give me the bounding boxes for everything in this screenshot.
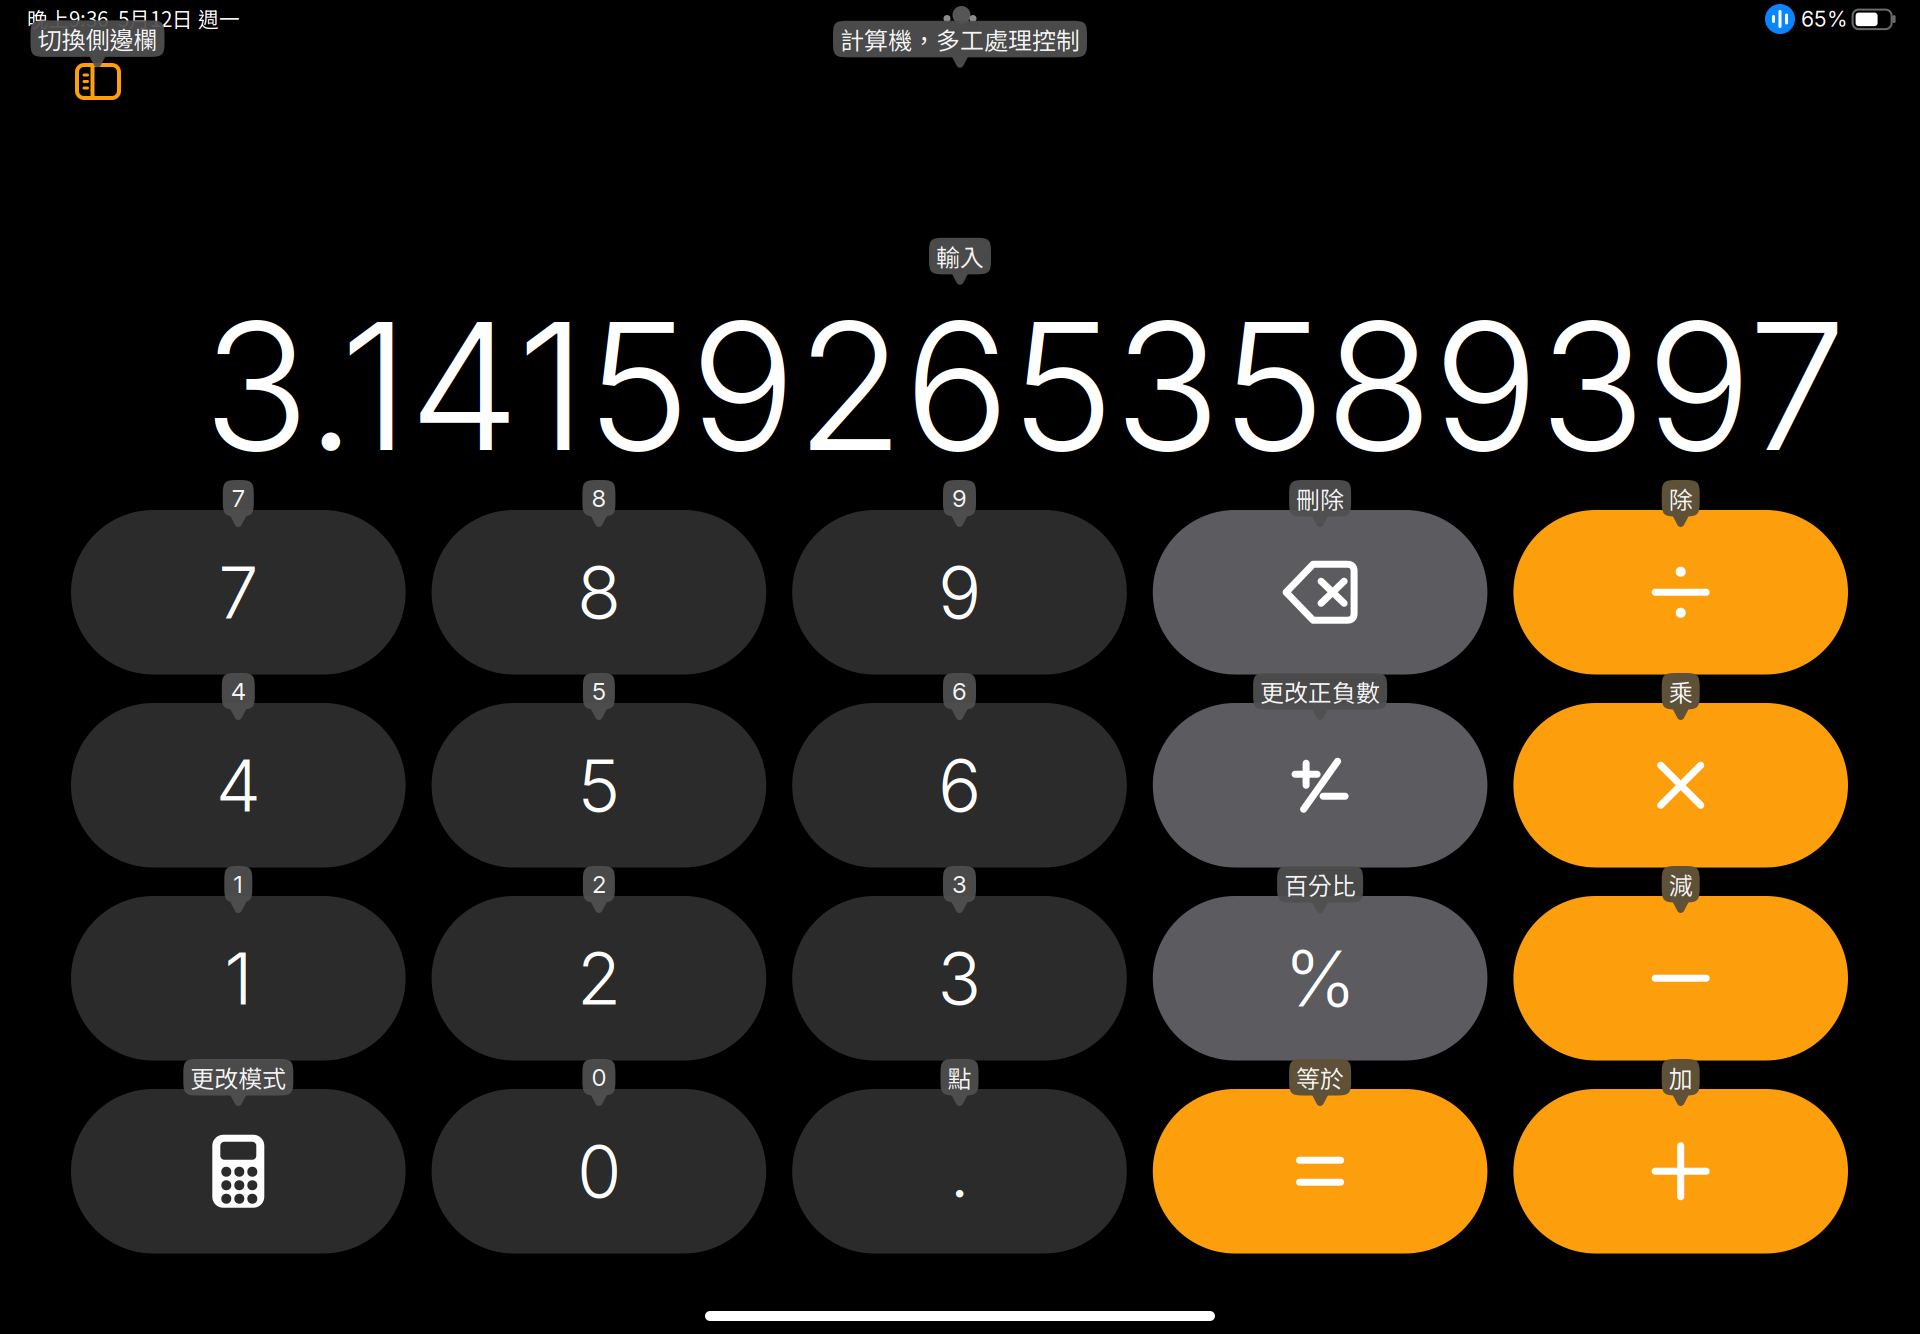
button[interactable]: 0 — [432, 1089, 766, 1253]
staticText: 6 — [952, 677, 967, 706]
button[interactable]: Equals — [1153, 1089, 1487, 1253]
staticText: % — [1284, 931, 1356, 1025]
button[interactable]: Add — [1513, 1089, 1848, 1253]
button[interactable]: 3 — [792, 896, 1127, 1060]
button[interactable]: Percent — [1153, 896, 1487, 1060]
staticText: 6 — [938, 742, 981, 829]
staticText: 加 — [1669, 1060, 1693, 1095]
button[interactable]: 1 — [71, 896, 406, 1060]
staticText: 65% — [1801, 6, 1848, 32]
staticText: 8 — [577, 549, 621, 636]
staticText: 輸入 — [936, 239, 984, 273]
staticText: 9 — [952, 484, 967, 513]
staticText: 5 — [592, 677, 606, 706]
button[interactable]: . — [792, 1089, 1127, 1253]
staticText: 9 — [938, 549, 981, 636]
staticText: 0 — [577, 1128, 621, 1215]
button[interactable]: 4 — [71, 703, 406, 867]
button[interactable]: 8 — [432, 510, 766, 674]
staticText: 更改正負數 — [1260, 674, 1380, 709]
staticText: 2 — [592, 870, 606, 899]
staticText: 減 — [1669, 867, 1693, 902]
staticText: 2 — [577, 935, 621, 1022]
staticText: 8 — [591, 484, 606, 513]
staticText: 1 — [224, 935, 252, 1022]
staticText: 3 — [937, 935, 981, 1022]
staticText: 更改模式 — [190, 1060, 286, 1095]
button[interactable]: Toggle Sidebar — [77, 65, 119, 98]
staticText: 1 — [233, 870, 243, 899]
button[interactable]: Multitasking Controls — [943, 1, 978, 27]
staticText: 7 — [218, 549, 258, 636]
staticText: 晚上9:36 5月12日 週一 — [27, 3, 240, 33]
button[interactable]: 7 — [71, 510, 406, 674]
staticText: 點 — [947, 1060, 971, 1095]
staticText: 除 — [1669, 481, 1693, 516]
staticText: 5 — [577, 742, 620, 829]
staticText: 4 — [216, 742, 261, 829]
button[interactable]: 2 — [432, 896, 766, 1060]
staticText: 乘 — [1669, 674, 1693, 709]
button[interactable]: Change mode — [71, 1089, 406, 1253]
staticText: 7 — [232, 484, 245, 513]
button[interactable]: 9 — [792, 510, 1127, 674]
staticText: 計算機，多工處理控制 — [840, 22, 1080, 56]
staticText: 切換側邊欄 — [37, 21, 157, 56]
staticText: . — [949, 1128, 969, 1215]
button[interactable]: Delete — [1153, 510, 1487, 674]
staticText: 3 — [952, 870, 967, 899]
staticText: 等於 — [1296, 1060, 1344, 1095]
staticText: 4 — [231, 677, 246, 706]
staticText: 0 — [591, 1063, 606, 1092]
staticText: 3.141592653589397 — [203, 279, 1846, 492]
button[interactable]: Multiply — [1513, 703, 1848, 867]
staticText: 百分比 — [1284, 867, 1356, 902]
button[interactable]: 5 — [432, 703, 766, 867]
staticText: 刪除 — [1296, 481, 1344, 516]
button[interactable]: Subtract — [1513, 896, 1848, 1060]
button[interactable]: Divide — [1513, 510, 1848, 674]
button[interactable]: Change sign — [1153, 703, 1487, 867]
button[interactable]: 6 — [792, 703, 1127, 867]
